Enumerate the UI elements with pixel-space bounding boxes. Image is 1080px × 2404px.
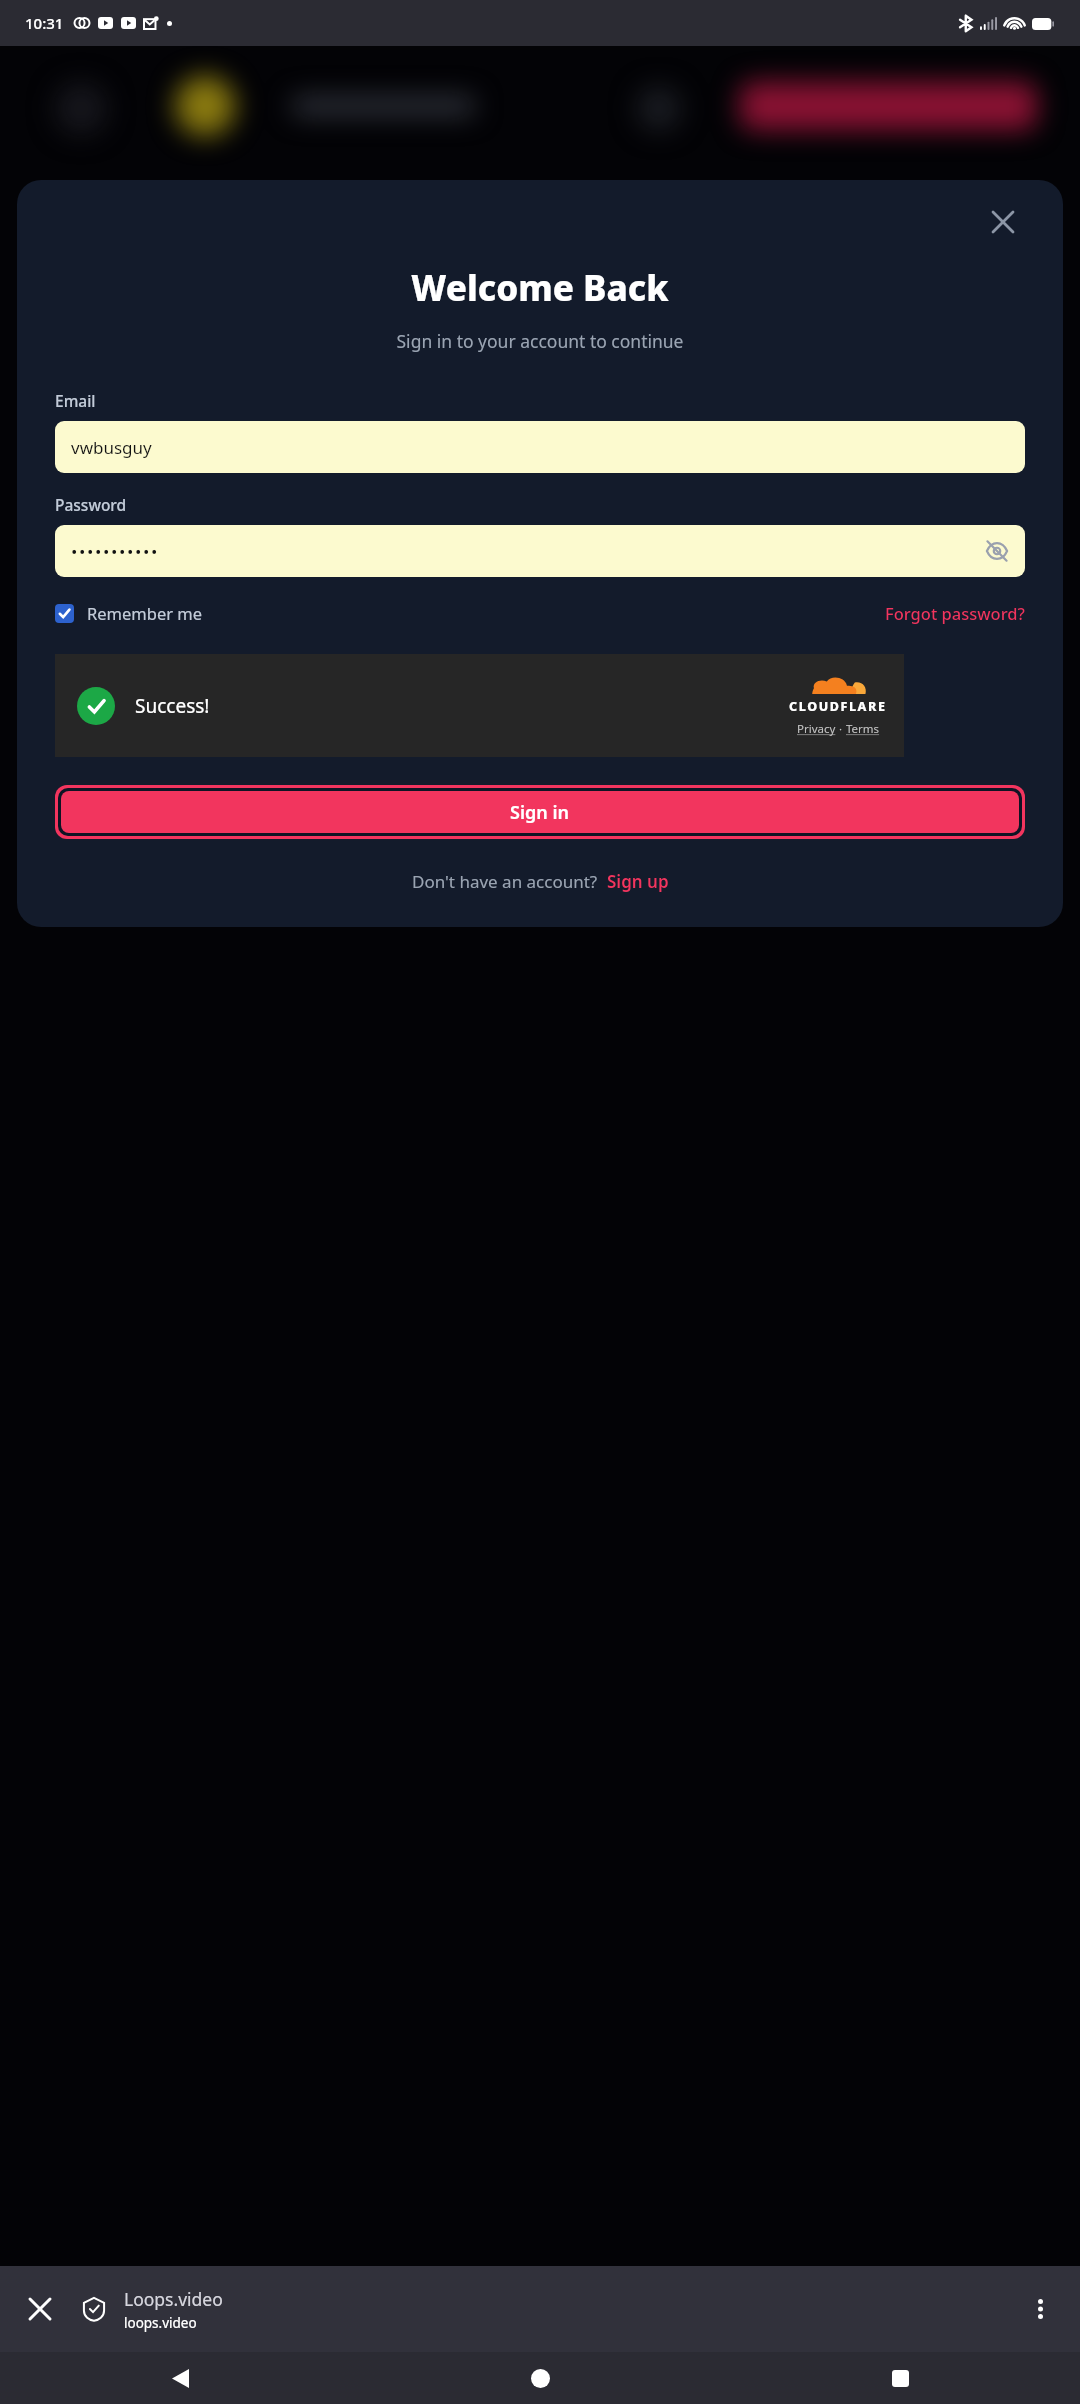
button[interactable]: Show password (979, 533, 1015, 569)
staticText: Sign in to your account to continue (55, 329, 1025, 353)
button[interactable]: Close (981, 200, 1025, 244)
staticText: Sign up (607, 870, 669, 893)
button[interactable]: Terms (846, 721, 880, 737)
button[interactable]: Recents (720, 2352, 1080, 2404)
button[interactable]: Close tab (16, 2285, 64, 2333)
staticText: Sign in (510, 800, 570, 825)
button[interactable]: Sign up (607, 870, 669, 893)
staticText: Forgot password? (885, 602, 1025, 624)
staticText: loops.video (124, 2314, 197, 2332)
button[interactable]: Home (360, 2352, 720, 2404)
button[interactable]: Site info (76, 2291, 112, 2327)
button[interactable]: ••••••••••• (55, 525, 1025, 577)
button[interactable]: Privacy (797, 721, 836, 737)
staticText: Password (55, 494, 127, 515)
staticText: Email (55, 390, 96, 411)
button[interactable]: More options (1016, 2285, 1064, 2333)
button[interactable]: Loops.video (124, 2287, 1016, 2332)
button[interactable]: Forgot password? (885, 598, 1025, 628)
staticText: Success! (135, 693, 210, 719)
button[interactable]: Remember me (55, 598, 203, 628)
staticText: ••••••••••• (71, 540, 159, 563)
button[interactable]: vwbusguy (55, 421, 1025, 473)
button[interactable]: Success! (55, 654, 904, 757)
staticText: · (836, 721, 846, 737)
staticText: vwbusguy (71, 436, 152, 459)
staticText: Don't have an account? (412, 870, 598, 893)
staticText: Remember me (87, 602, 203, 624)
button[interactable]: Back (0, 2352, 360, 2404)
button[interactable]: Sign in (61, 791, 1019, 833)
staticText: Loops.video (124, 2287, 223, 2311)
staticText: CLOUDFLARE (789, 698, 887, 715)
staticText: Welcome Back (55, 264, 1025, 312)
staticText: 10:31 (25, 13, 64, 33)
